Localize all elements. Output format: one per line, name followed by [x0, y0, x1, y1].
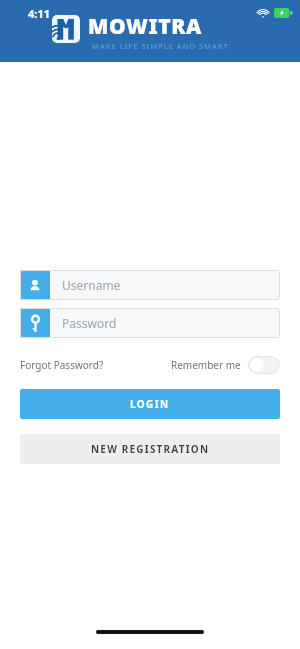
staticText: MOWITRA: [88, 12, 202, 41]
button[interactable]: Password: [20, 308, 280, 338]
staticText: MAKE LIFE SIMPLE AND SMART: [92, 41, 229, 51]
other: Username: [20, 270, 50, 300]
staticText: LOGIN: [130, 397, 170, 411]
staticText: Password: [62, 315, 117, 331]
staticText: Remember me: [171, 358, 241, 372]
button[interactable]: LOGIN: [20, 389, 280, 419]
other: Password: [20, 308, 50, 338]
button[interactable]: Username: [20, 270, 280, 300]
staticText: NEW REGISTRATION: [91, 442, 210, 456]
button[interactable]: Remember me toggle: [248, 356, 280, 374]
staticText: Forgot Password?: [20, 358, 104, 372]
staticText: 4:11: [28, 6, 50, 21]
button[interactable]: Forgot Password?: [20, 358, 104, 372]
button[interactable]: NEW REGISTRATION: [20, 434, 280, 464]
button[interactable]: Remember me: [171, 356, 280, 374]
staticText: Username: [62, 277, 121, 293]
